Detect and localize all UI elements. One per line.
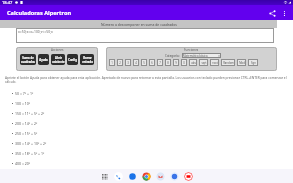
staticText: Sgn <box>251 61 256 65</box>
staticText: 5 <box>143 61 145 65</box>
staticText: 4 <box>135 61 137 65</box>
staticText: Funciones <box>184 48 199 52</box>
staticText: 1 <box>111 61 113 65</box>
staticText: 0 <box>183 61 185 65</box>
button[interactable]: Gmail <box>156 172 165 181</box>
staticText: 6 <box>151 61 153 65</box>
button[interactable]: Messages <box>128 172 137 181</box>
button[interactable]: root <box>210 59 219 66</box>
button[interactable]: 50 = 7² + 1² <box>12 88 293 98</box>
button[interactable]: All apps <box>100 172 109 181</box>
staticText: Matemática básica <box>183 54 208 58</box>
staticText: Calculadoras Alpertron <box>7 9 72 17</box>
staticText: x=50;x=x+100;c<=50;x <box>18 29 53 34</box>
button[interactable]: 2 <box>117 59 123 66</box>
staticText: Acciones <box>51 48 64 52</box>
button[interactable]: abs <box>189 59 197 66</box>
staticText: Suma de cuadrados <box>21 56 35 63</box>
staticText: 50 = 7² + 1² <box>15 91 34 96</box>
button[interactable]: 100 = 10² <box>12 98 293 108</box>
staticText: Config <box>68 58 77 62</box>
staticText: 100 = 10² <box>15 101 31 106</box>
button[interactable]: Chrome <box>142 172 151 181</box>
staticText: 2 <box>119 61 121 65</box>
staticText: 150 = 11² + 5² + 2² <box>15 111 45 116</box>
button[interactable]: YouTube <box>184 172 193 181</box>
button[interactable]: Matemática básica <box>182 53 221 58</box>
staticText: Borrar entrada <box>82 56 93 63</box>
button[interactable]: 9 <box>173 59 179 66</box>
button[interactable]: More options <box>278 7 290 19</box>
button[interactable]: 8 <box>165 59 171 66</box>
button[interactable]: Random <box>221 59 235 66</box>
button[interactable]: Phone <box>114 172 123 181</box>
button[interactable]: 7 <box>157 59 163 66</box>
staticText: 8 <box>167 61 169 65</box>
staticText: 200 = 14² + 2² <box>15 121 38 126</box>
staticText: root <box>212 61 218 65</box>
staticText: Mod <box>239 61 245 65</box>
staticText: abs <box>191 61 196 65</box>
staticText: sqrt <box>201 61 207 65</box>
button[interactable]: sqrt <box>199 59 208 66</box>
button[interactable]: 200 = 14² + 2² <box>12 118 293 128</box>
staticText: 350 = 18² + 5² + 1² <box>15 151 45 156</box>
button[interactable]: 300 = 14² + 10² + 2² <box>12 138 293 148</box>
button[interactable]: Config <box>67 54 78 65</box>
button[interactable]: 5 <box>141 59 147 66</box>
button[interactable]: 6 <box>149 59 155 66</box>
button[interactable]: Sgn <box>248 59 258 66</box>
staticText: 300 = 14² + 10² + 2² <box>15 141 47 146</box>
staticText: Número a descomponer en suma de cuadrado… <box>101 22 177 27</box>
staticText: Random <box>223 61 234 65</box>
button[interactable]: 3 <box>125 59 131 66</box>
button[interactable]: 0 <box>181 59 187 66</box>
button[interactable]: 1 <box>109 59 115 66</box>
button[interactable]: Borrar entrada <box>80 54 94 65</box>
button[interactable]: Abrir asistente <box>51 54 65 65</box>
button[interactable]: Mod <box>237 59 246 66</box>
button[interactable]: Ayuda <box>38 54 49 65</box>
button[interactable]: Suma de cuadrados <box>20 54 36 65</box>
staticText: Ayuda <box>39 58 48 62</box>
button[interactable]: x=50;x=x+100;c<=50;x <box>16 28 274 43</box>
staticText: 3 <box>127 61 129 65</box>
staticText: 250 = 15² + 5² <box>15 131 38 136</box>
button[interactable]: 400 = 20² <box>12 158 293 168</box>
button[interactable]: 150 = 11² + 5² + 2² <box>12 108 293 118</box>
staticText: Abrir asistente <box>52 56 65 63</box>
staticText: 400 = 20² <box>15 161 31 166</box>
staticText: 9 <box>175 61 177 65</box>
staticText: 7 <box>159 61 161 65</box>
staticText: 18:47 <box>2 0 13 5</box>
staticText: Categoría: <box>165 54 180 58</box>
button[interactable]: 250 = 15² + 5² <box>12 128 293 138</box>
staticText: Apriete el botón Ayuda para obtener ayud… <box>5 76 289 84</box>
button[interactable]: 350 = 18² + 5² + 1² <box>12 148 293 158</box>
button[interactable]: Share <box>266 7 278 19</box>
button[interactable]: 4 <box>133 59 139 66</box>
button[interactable]: Settings <box>170 172 179 181</box>
